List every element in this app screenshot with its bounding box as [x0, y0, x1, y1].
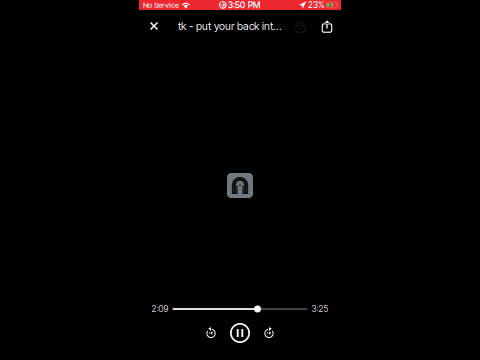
staticText: No Service [143, 0, 179, 9]
staticText: 2:09 [151, 304, 168, 314]
button[interactable]: Close [145, 15, 163, 37]
button[interactable]: Skip back 15 seconds [197, 323, 225, 343]
staticText: 3:25 [311, 304, 328, 314]
button[interactable]: Screen lock [292, 15, 308, 37]
staticText: 3:50 PM [228, 0, 261, 10]
button[interactable]: Pause [226, 323, 254, 343]
button[interactable]: Share [319, 15, 335, 37]
staticText: 23% [308, 0, 324, 10]
button[interactable]: Skip forward 15 seconds [255, 323, 283, 343]
staticText: tk - put your back int... [178, 19, 282, 32]
